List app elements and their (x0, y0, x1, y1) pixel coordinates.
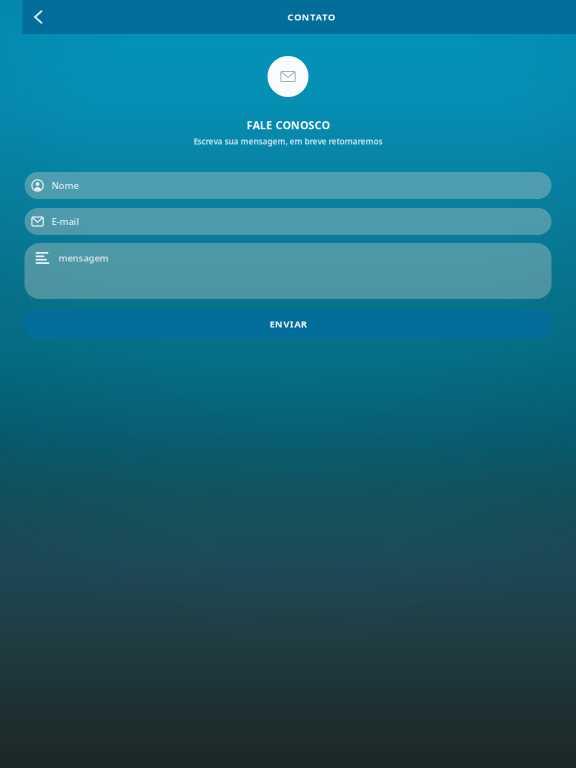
staticText: O (294, 11, 301, 23)
staticText: A (294, 318, 300, 330)
staticText: C (287, 11, 293, 23)
button[interactable]: Nome (24, 172, 551, 199)
staticText: Escreva sua mensagem, em breve retornare… (193, 136, 382, 147)
staticText: T (310, 11, 315, 23)
staticText: F (246, 118, 252, 132)
staticText: C (275, 118, 282, 132)
staticText: N (275, 318, 283, 330)
staticText: E (266, 118, 272, 132)
staticText: E-mail (51, 215, 79, 228)
button[interactable]: Back (22, 0, 54, 34)
staticText: O (300, 118, 308, 132)
staticText: V (283, 318, 289, 330)
staticText: O (322, 118, 330, 132)
button[interactable]: E-mail (24, 208, 551, 235)
staticText: mensagem (58, 252, 108, 264)
staticText: R (301, 318, 307, 330)
staticText: C (314, 118, 321, 132)
staticText: A (316, 11, 322, 23)
staticText: A (253, 118, 260, 132)
staticText: N (301, 11, 309, 23)
staticText: L (260, 118, 266, 132)
staticText: E (269, 318, 274, 330)
staticText: I (290, 318, 294, 330)
button[interactable]: E (24, 310, 551, 338)
staticText: Nome (51, 179, 78, 192)
staticText: O (283, 118, 291, 132)
button[interactable]: mensagem (24, 243, 551, 299)
staticText: T (322, 11, 327, 23)
staticText: N (291, 118, 300, 132)
staticText: O (328, 11, 335, 23)
staticText: S (308, 118, 314, 132)
